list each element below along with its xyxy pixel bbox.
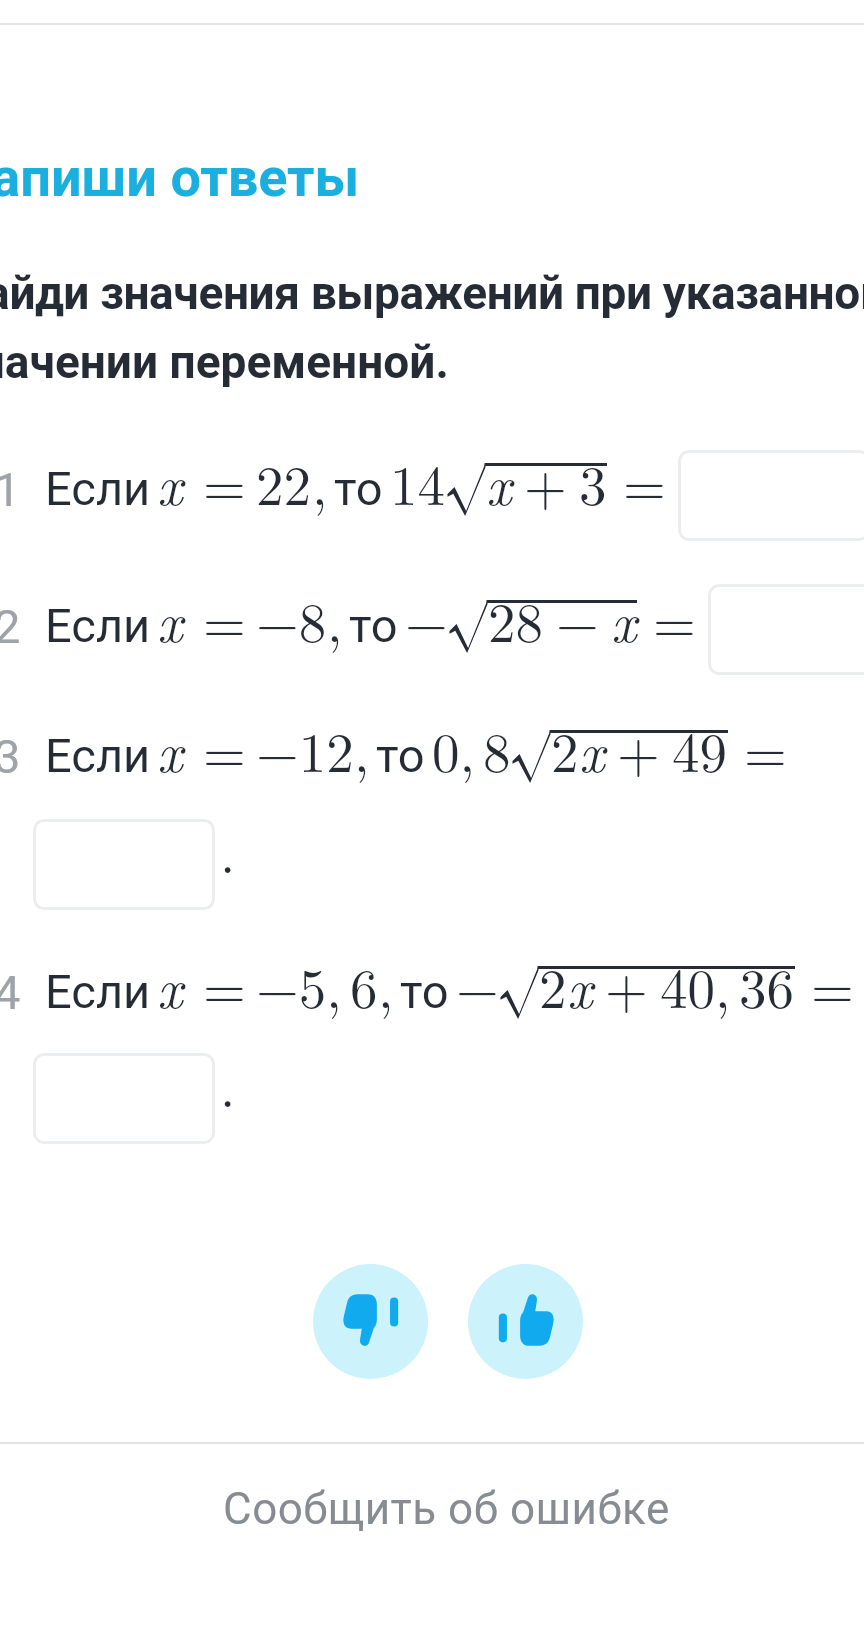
staticText: то: [376, 728, 425, 783]
button[interactable]: Answer field: [708, 584, 864, 675]
staticText: +: [605, 946, 648, 1024]
staticText: x: [157, 710, 183, 788]
staticText: Запиши ответы: [0, 146, 360, 209]
staticText: значении переменной.: [0, 335, 449, 389]
staticText: Если: [45, 598, 151, 653]
staticText: =: [653, 580, 696, 658]
staticText: x: [486, 443, 512, 521]
staticText: 0,: [432, 710, 475, 788]
staticText: 1: [0, 462, 21, 517]
staticText: −: [405, 580, 448, 658]
button[interactable]: Dislike: [313, 1264, 428, 1379]
staticText: 2: [539, 946, 567, 1024]
staticText: 36: [739, 946, 795, 1024]
staticText: .: [220, 1045, 236, 1123]
staticText: Сообщить об ошибке: [223, 1483, 670, 1535]
staticText: то: [349, 598, 398, 653]
staticText: .: [220, 811, 236, 889]
staticText: x: [157, 443, 183, 521]
button[interactable]: Answer field: [33, 819, 215, 910]
staticText: −12: [256, 710, 354, 788]
staticText: 3: [0, 729, 21, 784]
staticText: =: [811, 946, 854, 1024]
staticText: 6: [350, 946, 378, 1024]
staticText: то: [334, 461, 383, 516]
staticText: =: [203, 946, 246, 1024]
staticText: ,: [354, 710, 370, 788]
staticText: x: [611, 580, 637, 658]
staticText: 49: [672, 710, 728, 788]
staticText: ,: [327, 580, 343, 658]
staticText: 40,: [660, 946, 731, 1024]
staticText: ,: [312, 443, 328, 521]
staticText: =: [744, 710, 787, 788]
staticText: ,: [378, 946, 394, 1024]
staticText: Если: [45, 728, 151, 783]
staticText: 14: [390, 443, 446, 521]
staticText: x: [579, 710, 605, 788]
staticText: Если: [45, 964, 151, 1019]
button[interactable]: Сообщить об ошибке: [0, 1442, 864, 1560]
staticText: x: [567, 946, 593, 1024]
staticText: то: [400, 964, 449, 1019]
staticText: −: [456, 946, 499, 1024]
staticText: −: [556, 580, 599, 658]
staticText: 22: [256, 443, 312, 521]
staticText: 28: [488, 580, 544, 658]
staticText: 8: [483, 710, 511, 788]
staticText: =: [203, 710, 246, 788]
staticText: −8: [256, 580, 327, 658]
staticText: 3: [579, 443, 607, 521]
button[interactable]: Answer field: [678, 450, 864, 541]
staticText: Если: [45, 461, 151, 516]
button[interactable]: Answer field: [33, 1053, 215, 1144]
button[interactable]: Like: [468, 1264, 583, 1379]
staticText: 2: [551, 710, 579, 788]
staticText: +: [617, 710, 660, 788]
staticText: =: [623, 443, 666, 521]
staticText: +: [524, 443, 567, 521]
staticText: 2: [0, 599, 21, 654]
staticText: Найди значения выражений при указанном: [0, 266, 864, 320]
staticText: =: [203, 443, 246, 521]
staticText: x: [157, 946, 183, 1024]
staticText: x: [157, 580, 183, 658]
staticText: =: [203, 580, 246, 658]
staticText: 4: [0, 965, 21, 1020]
staticText: −5,: [256, 946, 342, 1024]
